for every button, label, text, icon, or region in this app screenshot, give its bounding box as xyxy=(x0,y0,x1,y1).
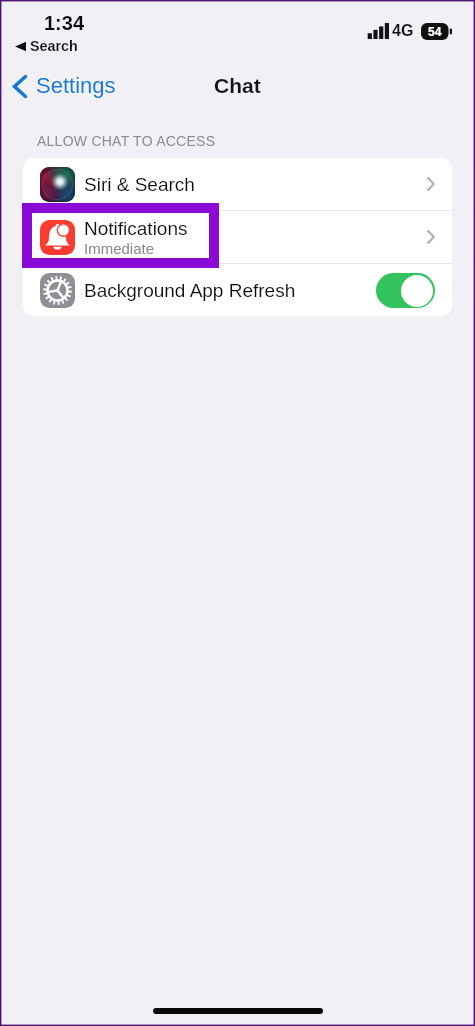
staticText: Notifications xyxy=(84,218,188,239)
staticText: 4G xyxy=(392,22,414,40)
other: Open Notifications xyxy=(427,230,435,244)
button[interactable]: Siri & Search xyxy=(23,158,452,210)
staticText: 54 xyxy=(428,25,442,38)
button[interactable]: Search xyxy=(15,38,78,54)
staticText: Search xyxy=(30,38,78,54)
staticText: Chat xyxy=(214,74,261,97)
staticText: Siri & Search xyxy=(84,174,195,195)
staticText: 1:34 xyxy=(44,12,85,34)
button[interactable]: Background App Refresh xyxy=(23,264,452,316)
staticText: Settings xyxy=(36,73,116,98)
button[interactable]: Settings xyxy=(13,70,116,103)
other: Open Siri & Search xyxy=(427,177,435,191)
button[interactable]: Background App Refresh toggle xyxy=(376,273,435,308)
button[interactable]: Notifications xyxy=(23,211,452,263)
staticText: Immediate xyxy=(84,240,155,257)
staticText: Background App Refresh xyxy=(84,280,296,301)
staticText: ALLOW CHAT TO ACCESS xyxy=(37,133,216,149)
